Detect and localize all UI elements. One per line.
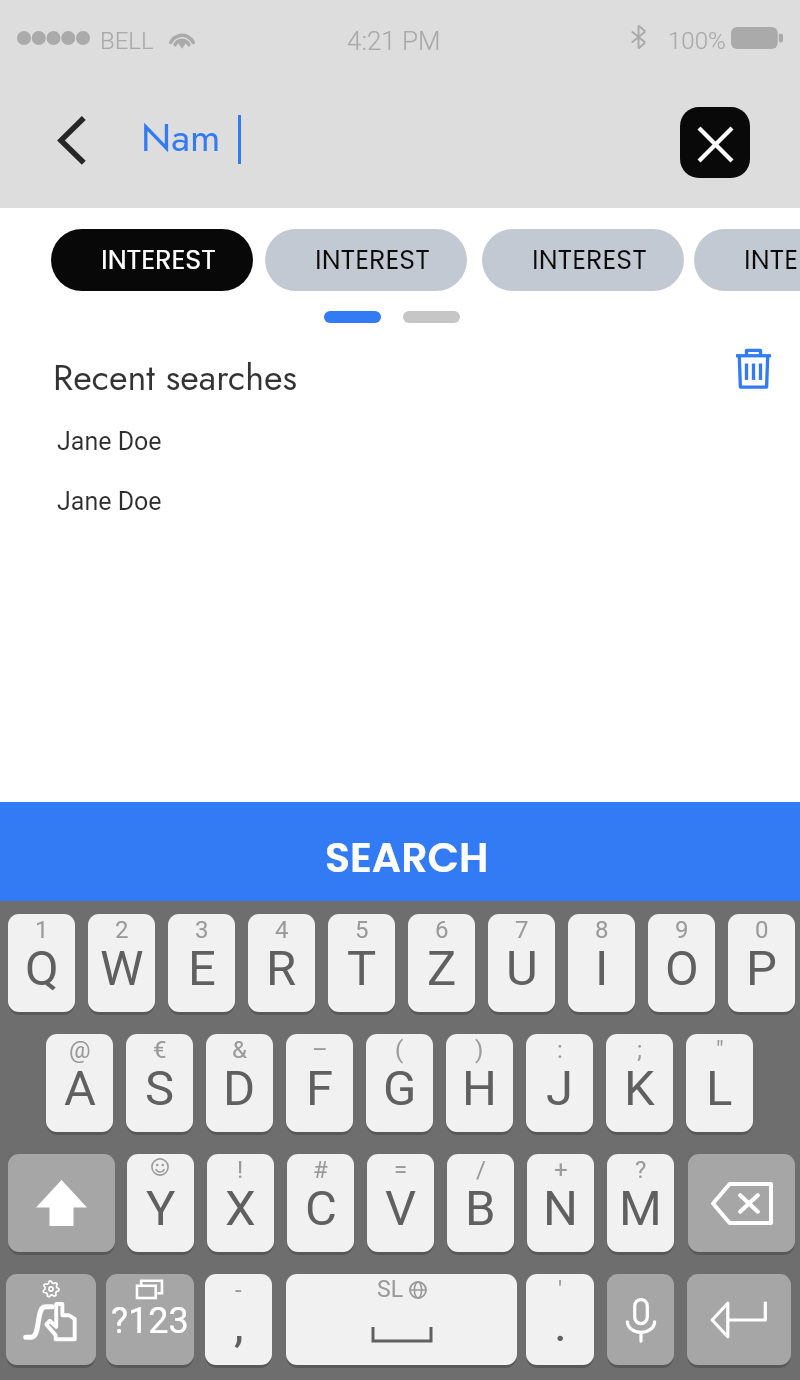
button[interactable]: : bbox=[526, 1034, 593, 1132]
staticText: " bbox=[716, 1036, 724, 1064]
staticText: X bbox=[225, 1180, 256, 1237]
staticText: ) bbox=[475, 1036, 484, 1064]
button[interactable]: Jane Doe bbox=[57, 427, 162, 456]
staticText: V bbox=[385, 1180, 417, 1237]
staticText: C bbox=[305, 1180, 337, 1237]
staticText: ' bbox=[558, 1276, 563, 1304]
staticText: J bbox=[546, 1060, 574, 1117]
staticText: ?123 bbox=[111, 1300, 189, 1342]
button[interactable]: & bbox=[206, 1034, 273, 1132]
staticText: Z bbox=[427, 940, 457, 997]
staticText: - bbox=[235, 1276, 242, 1304]
staticText: S bbox=[145, 1060, 175, 1117]
staticText: 1 bbox=[35, 916, 49, 944]
staticText: INTEREST bbox=[101, 241, 216, 279]
staticText: . bbox=[554, 1296, 567, 1353]
button[interactable]: Backspace bbox=[688, 1154, 795, 1252]
button[interactable]: 2 bbox=[88, 914, 155, 1012]
button[interactable]: SL bbox=[286, 1274, 517, 1365]
staticText: R bbox=[266, 940, 297, 997]
button[interactable]: 4 bbox=[248, 914, 315, 1012]
button[interactable]: / bbox=[447, 1154, 514, 1252]
button[interactable]: + bbox=[527, 1154, 594, 1252]
button[interactable]: INTEREST bbox=[265, 229, 467, 291]
staticText: F bbox=[306, 1060, 334, 1117]
staticText: N bbox=[543, 1180, 578, 1237]
staticText: ; bbox=[637, 1036, 643, 1064]
staticText: 8 bbox=[595, 916, 609, 944]
staticText: 7 bbox=[515, 916, 529, 944]
button[interactable]: 0 bbox=[728, 914, 795, 1012]
staticText: # bbox=[313, 1156, 328, 1184]
staticText: ! bbox=[237, 1156, 244, 1184]
button[interactable]: ! bbox=[207, 1154, 274, 1252]
staticText: Y bbox=[146, 1180, 176, 1237]
staticText: W bbox=[100, 940, 144, 997]
staticText: 0 bbox=[755, 916, 769, 944]
button[interactable]: Enter bbox=[687, 1274, 791, 1365]
staticText: L bbox=[706, 1060, 733, 1117]
staticText: + bbox=[554, 1156, 568, 1184]
button[interactable]: ? bbox=[607, 1154, 674, 1252]
button[interactable]: = bbox=[367, 1154, 434, 1252]
staticText: @ bbox=[69, 1036, 91, 1064]
button[interactable]: € bbox=[126, 1034, 193, 1132]
staticText: – bbox=[312, 1036, 328, 1064]
staticText: INTEREST bbox=[532, 241, 647, 279]
staticText: E bbox=[188, 940, 216, 997]
staticText: Nam bbox=[141, 109, 221, 165]
button[interactable]: 1 bbox=[8, 914, 75, 1012]
button[interactable]: Clear search bbox=[680, 107, 750, 178]
staticText: 5 bbox=[355, 916, 369, 944]
button[interactable]: Clear recent searches bbox=[728, 340, 778, 398]
button[interactable]: 5 bbox=[328, 914, 395, 1012]
button[interactable]: – bbox=[286, 1034, 353, 1132]
button[interactable]: SEARCH bbox=[0, 802, 800, 901]
staticText: 9 bbox=[675, 916, 689, 944]
staticText: / bbox=[476, 1156, 486, 1184]
staticText: 4 bbox=[275, 916, 289, 944]
staticText: D bbox=[223, 1060, 256, 1117]
button[interactable]: ( bbox=[366, 1034, 433, 1132]
staticText: B bbox=[465, 1180, 496, 1237]
button[interactable]: ' bbox=[526, 1274, 594, 1365]
button[interactable]: Y bbox=[127, 1154, 194, 1252]
staticText: H bbox=[462, 1060, 497, 1117]
staticText: , bbox=[234, 1296, 244, 1353]
button[interactable]: " bbox=[686, 1034, 753, 1132]
button[interactable]: Keyboard settings bbox=[6, 1274, 96, 1365]
button[interactable]: 6 bbox=[408, 914, 475, 1012]
staticText: INTEREST bbox=[315, 241, 430, 279]
button[interactable]: 3 bbox=[168, 914, 235, 1012]
staticText: O bbox=[665, 940, 699, 997]
button[interactable]: 7 bbox=[488, 914, 555, 1012]
button[interactable]: ) bbox=[446, 1034, 513, 1132]
staticText: M bbox=[619, 1180, 662, 1237]
button[interactable]: 9 bbox=[648, 914, 715, 1012]
button[interactable]: INTEREST bbox=[51, 229, 253, 291]
staticText: Recent searches bbox=[53, 351, 298, 403]
button[interactable]: Shift bbox=[8, 1154, 115, 1252]
staticText: INTEREST bbox=[744, 241, 800, 279]
button[interactable]: # bbox=[287, 1154, 354, 1252]
staticText: G bbox=[383, 1060, 417, 1117]
staticText: K bbox=[624, 1060, 655, 1117]
staticText: A bbox=[64, 1060, 96, 1117]
button[interactable]: Symbols bbox=[106, 1274, 194, 1365]
button[interactable]: @ bbox=[46, 1034, 113, 1132]
button[interactable]: Voice input bbox=[607, 1274, 674, 1365]
button[interactable]: ; bbox=[606, 1034, 673, 1132]
staticText: 2 bbox=[115, 916, 129, 944]
staticText: 100% bbox=[668, 27, 726, 55]
staticText: : bbox=[557, 1036, 563, 1064]
staticText: ( bbox=[395, 1036, 404, 1064]
button[interactable]: INTEREST bbox=[482, 229, 684, 291]
button[interactable]: Jane Doe bbox=[57, 487, 162, 516]
staticText: 3 bbox=[195, 916, 209, 944]
button[interactable]: 8 bbox=[568, 914, 635, 1012]
button[interactable]: Back bbox=[34, 102, 110, 178]
button[interactable]: INTEREST bbox=[694, 229, 800, 291]
staticText: = bbox=[394, 1156, 408, 1184]
staticText: BELL bbox=[100, 27, 154, 55]
button[interactable]: - bbox=[205, 1274, 272, 1365]
